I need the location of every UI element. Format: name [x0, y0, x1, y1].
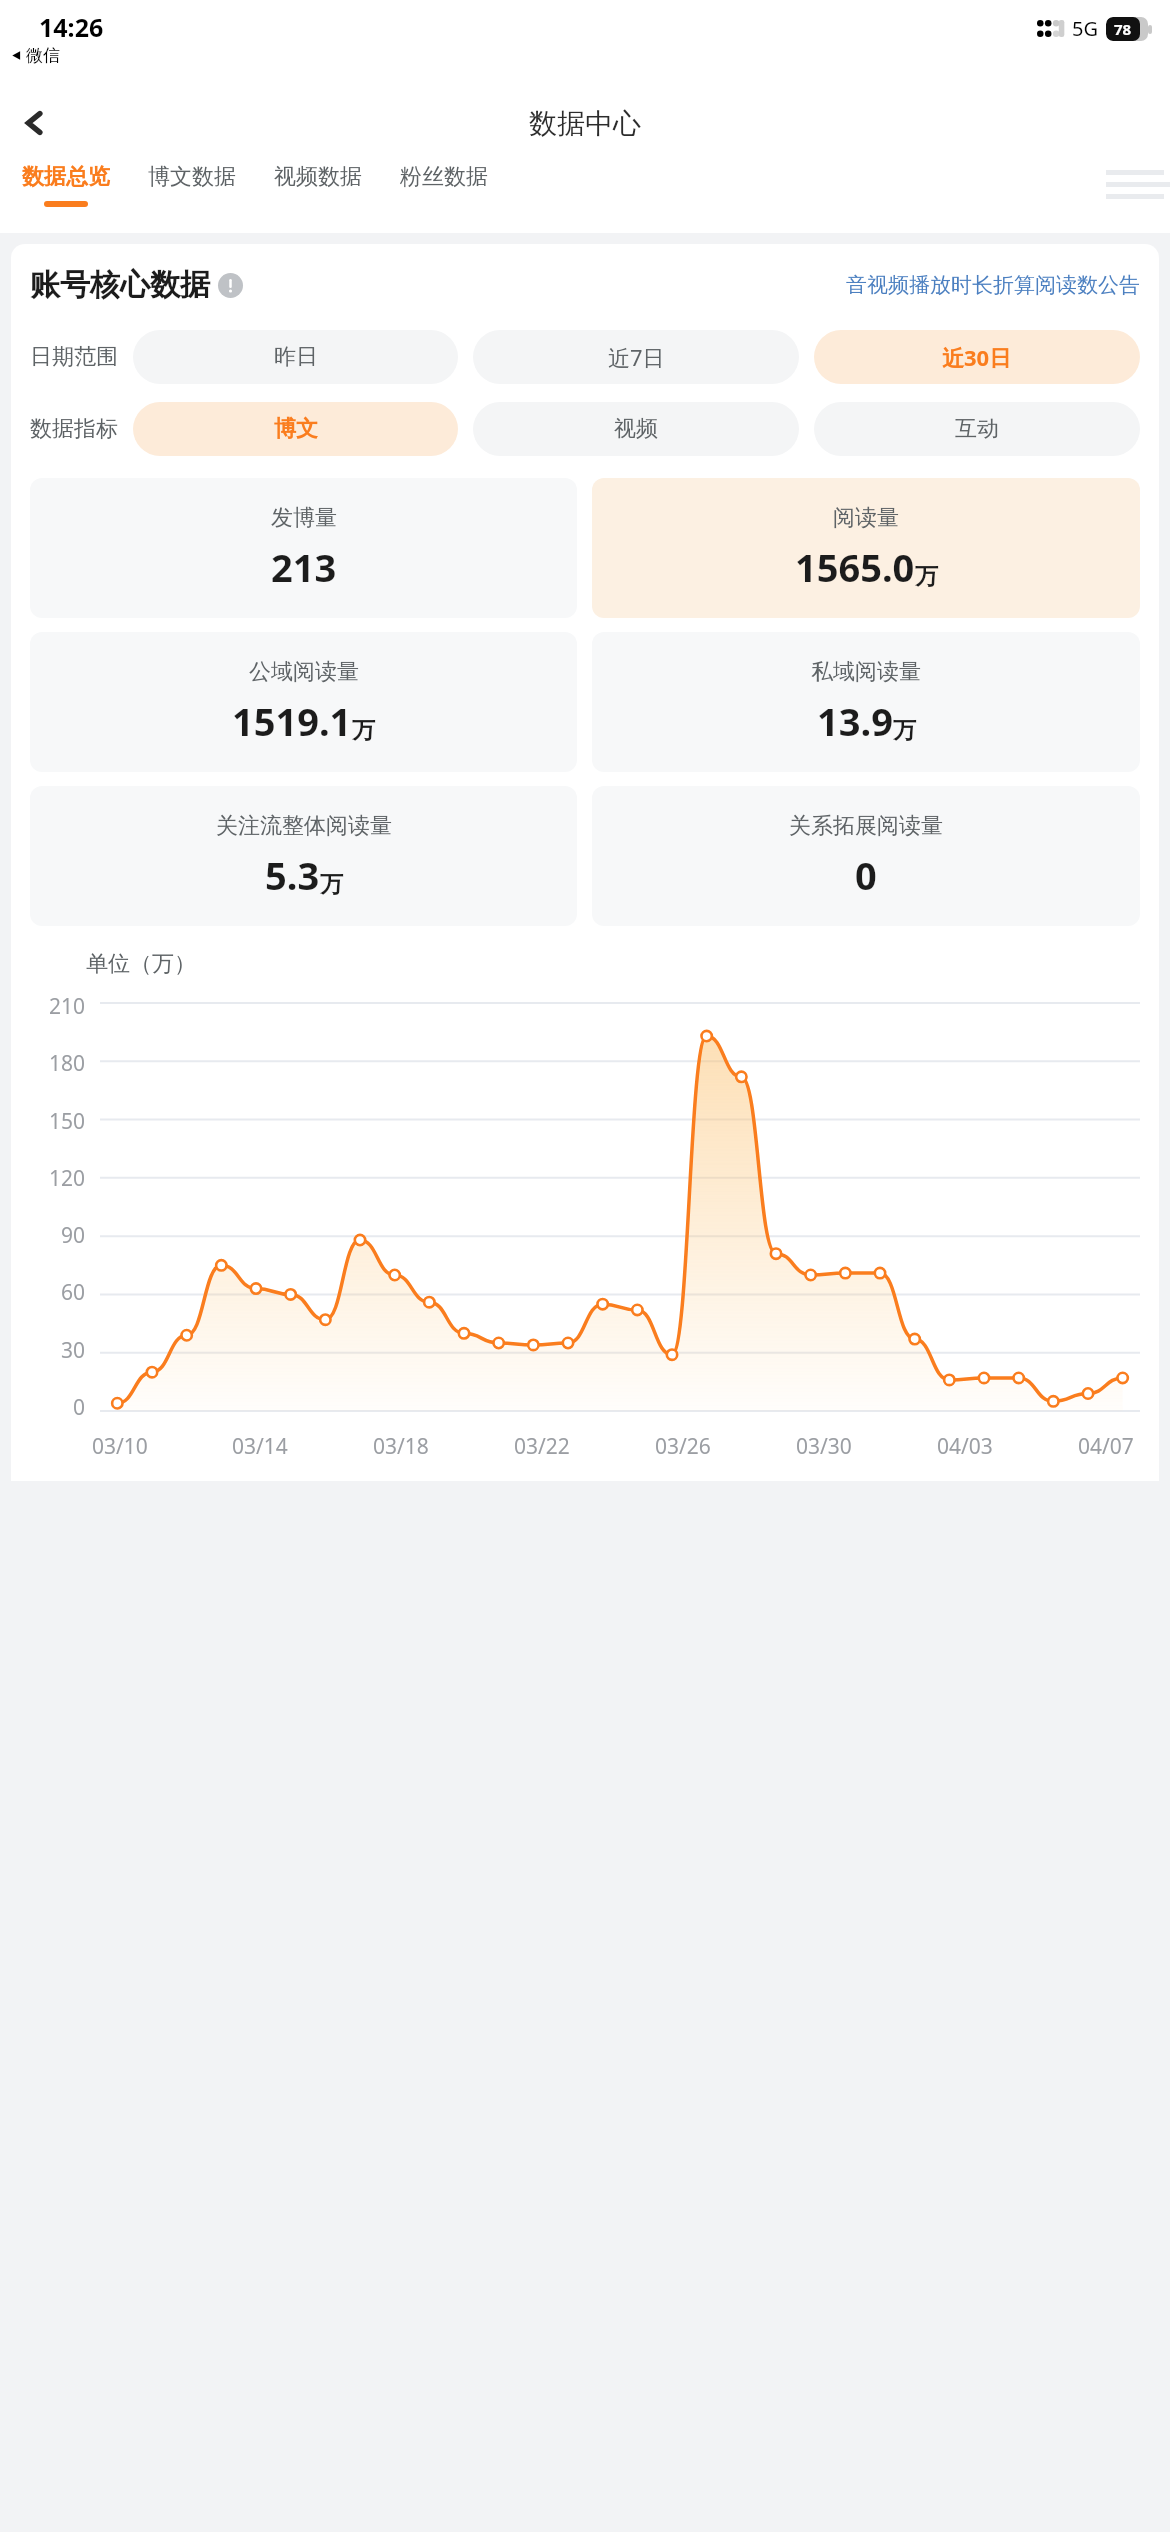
staticText: 公域阅读量	[249, 658, 359, 686]
staticText: 1565.0	[795, 541, 915, 593]
staticText: 关注流整体阅读量	[216, 812, 392, 840]
button[interactable]: 视频	[473, 402, 799, 456]
button[interactable]: 视频数据	[266, 158, 370, 196]
button[interactable]: 近7日	[473, 330, 799, 384]
staticText: 关系拓展阅读量	[789, 812, 943, 840]
staticText: 视频	[614, 415, 658, 443]
staticText: 单位（万）	[86, 950, 196, 978]
staticText: 1519.1	[232, 695, 352, 747]
staticText: 03/22	[514, 1432, 570, 1461]
staticText: 微信	[26, 45, 60, 66]
staticText: 粉丝数据	[400, 163, 488, 191]
staticText: 03/26	[655, 1432, 711, 1461]
button[interactable]: 发博量	[30, 478, 577, 618]
button[interactable]: 音视频播放时长折算阅读数公告	[846, 272, 1140, 298]
button[interactable]: 互动	[814, 402, 1140, 456]
staticText: 03/14	[232, 1432, 288, 1461]
staticText: 13.9	[817, 695, 893, 747]
staticText: 210	[49, 992, 86, 1021]
staticText: 30	[61, 1336, 86, 1365]
button[interactable]: 粉丝数据	[392, 158, 496, 196]
button[interactable]: 博文	[133, 402, 458, 456]
staticText: 180	[49, 1049, 86, 1078]
staticText: 120	[49, 1164, 86, 1193]
staticText: 5.3	[265, 849, 320, 901]
staticText: 150	[49, 1107, 86, 1136]
staticText: 5G	[1072, 15, 1098, 42]
staticText: 私域阅读量	[811, 658, 921, 686]
staticText: 视频数据	[274, 163, 362, 191]
staticText: 万	[352, 716, 375, 745]
staticText: 04/07	[1078, 1432, 1134, 1461]
staticText: 万	[320, 870, 343, 899]
staticText: 90	[61, 1221, 86, 1250]
staticText: 博文数据	[148, 163, 236, 191]
staticText: 近30日	[942, 342, 1012, 372]
staticText: 发博量	[271, 504, 337, 532]
staticText: 昨日	[274, 343, 318, 371]
button[interactable]: 关注流整体阅读量	[30, 786, 577, 926]
button[interactable]: 数据总览	[14, 158, 118, 207]
button[interactable]: 阅读量	[592, 478, 1140, 618]
staticText: 数据中心	[529, 106, 641, 141]
button[interactable]: 说明	[218, 273, 243, 298]
button[interactable]: 博文数据	[140, 158, 244, 196]
staticText: 日期范围	[30, 343, 118, 371]
staticText: 万	[915, 562, 938, 591]
staticText: 数据指标	[30, 415, 118, 443]
button[interactable]: 私域阅读量	[592, 632, 1140, 772]
staticText: 78	[1114, 19, 1132, 39]
staticText: 04/03	[937, 1432, 993, 1461]
staticText: 213	[271, 541, 337, 593]
staticText: 03/10	[92, 1432, 148, 1461]
staticText: 03/18	[373, 1432, 429, 1461]
staticText: 近7日	[608, 342, 665, 372]
button[interactable]: 关系拓展阅读量	[592, 786, 1140, 926]
staticText: 博文	[274, 415, 318, 443]
staticText: 阅读量	[833, 504, 899, 532]
staticText: 0	[73, 1393, 86, 1422]
button[interactable]: 昨日	[133, 330, 458, 384]
staticText: 万	[893, 716, 916, 745]
button[interactable]: Back	[10, 98, 60, 148]
staticText: 14:26	[39, 10, 104, 44]
staticText: 账号核心数据	[30, 266, 210, 304]
staticText: 0	[855, 849, 877, 901]
staticText: 数据总览	[22, 163, 110, 191]
button[interactable]: 公域阅读量	[30, 632, 577, 772]
button[interactable]: 近30日	[814, 330, 1140, 384]
staticText: 60	[61, 1278, 86, 1307]
staticText: 03/30	[796, 1432, 852, 1461]
staticText: 互动	[955, 415, 999, 443]
